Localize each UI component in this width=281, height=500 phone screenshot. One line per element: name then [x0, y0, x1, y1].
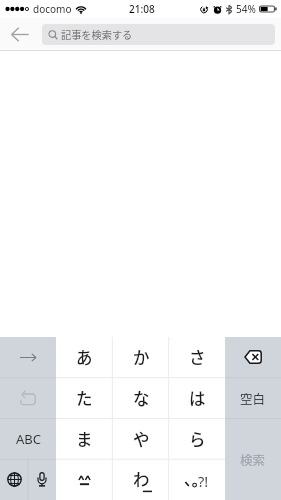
button[interactable]: 記事を検索する — [42, 24, 275, 45]
button[interactable]: Emoticon — [56, 459, 113, 500]
button[interactable]: Back — [0, 18, 42, 51]
staticText: な — [133, 386, 150, 410]
staticText: わ — [133, 467, 150, 491]
staticText: 記事を検索する — [61, 27, 133, 42]
staticText: ABC — [16, 430, 41, 448]
button[interactable]: 検索 — [225, 418, 281, 500]
button[interactable]: わ — [113, 459, 169, 500]
staticText: か — [133, 345, 150, 369]
staticText: ま — [76, 427, 93, 451]
button[interactable]: Undo — [0, 377, 56, 418]
button[interactable]: は — [169, 377, 225, 418]
button[interactable]: た — [56, 377, 113, 418]
button[interactable]: ら — [169, 418, 225, 459]
button[interactable]: か — [113, 337, 169, 377]
staticText: 21:08 — [129, 2, 155, 16]
staticText: さ — [189, 345, 206, 369]
button[interactable]: Punctuation — [169, 459, 225, 500]
button[interactable]: Voice input — [28, 459, 56, 500]
button[interactable]: な — [113, 377, 169, 418]
staticText: は — [189, 386, 206, 410]
staticText: 空白 — [240, 389, 266, 407]
staticText: た — [76, 386, 93, 410]
staticText: 検索 — [240, 450, 266, 468]
button[interactable]: ABC — [0, 418, 56, 459]
staticText: や — [133, 427, 150, 451]
button[interactable]: や — [113, 418, 169, 459]
button[interactable]: Delete — [225, 337, 281, 377]
button[interactable]: あ — [56, 337, 113, 377]
staticText: ら — [189, 427, 206, 451]
button[interactable]: Next — [0, 337, 56, 377]
staticText: ?! — [198, 471, 209, 491]
button[interactable]: ま — [56, 418, 113, 459]
button[interactable]: Switch keyboard — [0, 459, 28, 500]
button[interactable]: 空白 — [225, 377, 281, 418]
button[interactable]: さ — [169, 337, 225, 377]
staticText: 54% — [236, 2, 256, 16]
staticText: あ — [76, 345, 93, 369]
staticText: docomo — [33, 2, 72, 16]
